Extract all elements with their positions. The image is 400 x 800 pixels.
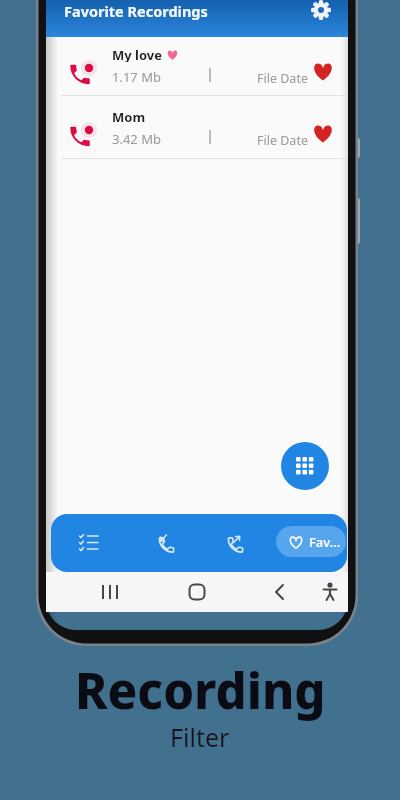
- staticText: Filter: [170, 720, 230, 754]
- staticText: 1.17 Mb: [112, 68, 161, 86]
- button[interactable]: [185, 580, 209, 604]
- staticText: Mom: [112, 108, 146, 124]
- button[interactable]: [79, 531, 103, 555]
- staticText: Recording: [75, 657, 326, 724]
- button[interactable]: [154, 530, 180, 556]
- button[interactable]: Fav...: [276, 526, 346, 557]
- staticText: Favorite Recordings: [64, 1, 208, 21]
- staticText: File Date: [257, 70, 308, 87]
- button[interactable]: [318, 580, 342, 604]
- button[interactable]: [98, 580, 122, 604]
- button[interactable]: [281, 442, 329, 490]
- staticText: File Date: [257, 132, 308, 149]
- button[interactable]: [223, 530, 249, 556]
- button[interactable]: [311, 60, 335, 84]
- button[interactable]: [268, 580, 292, 604]
- staticText: My love: [112, 46, 162, 62]
- button[interactable]: [308, 0, 334, 26]
- staticText: 3.42 Mb: [112, 130, 161, 148]
- staticText: Fav...: [309, 533, 341, 551]
- button[interactable]: [311, 122, 335, 146]
